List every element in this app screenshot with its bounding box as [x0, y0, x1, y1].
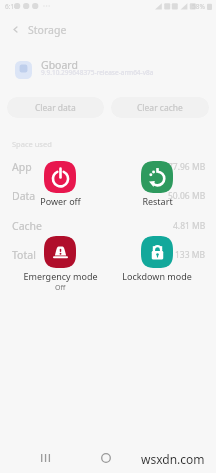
- button[interactable]: Power off: [12, 161, 108, 207]
- staticText: 77.96 MB: [168, 161, 206, 173]
- staticText: 6:14: [5, 2, 18, 11]
- staticText: Lockdown mode: [122, 270, 192, 282]
- button[interactable]: Restart: [109, 161, 205, 207]
- staticText: wsxdn.com: [141, 451, 205, 467]
- button[interactable]: Recent apps: [33, 446, 59, 470]
- staticText: Off: [55, 283, 66, 293]
- staticText: Clear cache: [137, 102, 183, 114]
- button[interactable]: Emergency mode: [12, 236, 108, 293]
- staticText: 50.06 MB: [168, 190, 206, 202]
- button[interactable]: Clear cache: [111, 97, 209, 118]
- staticText: 58%: [192, 2, 205, 11]
- staticText: Storage: [28, 23, 67, 37]
- staticText: Data: [12, 189, 36, 203]
- staticText: Clear data: [35, 102, 76, 114]
- staticText: Restart: [142, 195, 173, 207]
- button[interactable]: Home: [93, 446, 119, 470]
- staticText: 9.9.10.299648375-release-arm64-v8a: [41, 68, 154, 77]
- staticText: Space used: [12, 139, 52, 149]
- staticText: 133 MB: [175, 249, 206, 261]
- staticText: 4.81 MB: [173, 220, 206, 232]
- staticText: Gboard: [41, 58, 78, 72]
- staticText: Emergency mode: [23, 270, 98, 282]
- button[interactable]: Lockdown mode: [109, 236, 205, 282]
- staticText: Cache: [12, 219, 42, 233]
- staticText: App: [12, 160, 32, 174]
- button[interactable]: Storage: [0, 20, 216, 39]
- staticText: Power off: [40, 195, 81, 207]
- staticText: Total: [12, 248, 36, 262]
- button[interactable]: Clear data: [7, 97, 104, 118]
